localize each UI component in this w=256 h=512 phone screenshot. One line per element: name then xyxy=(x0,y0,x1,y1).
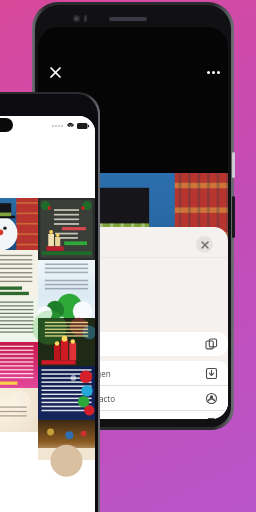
button[interactable]: Close xyxy=(44,61,66,83)
staticText: Guardar imagen xyxy=(49,368,111,379)
button[interactable] xyxy=(0,342,38,388)
button[interactable] xyxy=(0,298,38,342)
button[interactable] xyxy=(38,198,95,260)
button[interactable] xyxy=(0,250,38,298)
button[interactable] xyxy=(0,388,38,432)
button[interactable]: Dismiss xyxy=(196,236,213,253)
button[interactable]: Copiar xyxy=(38,332,228,356)
button[interactable] xyxy=(38,420,95,460)
button[interactable]: Añadir a contacto xyxy=(38,386,228,410)
button[interactable] xyxy=(38,366,95,420)
button[interactable]: Guardar imagen xyxy=(38,361,228,385)
button[interactable]: Imprimir xyxy=(38,411,228,419)
button[interactable] xyxy=(38,318,95,366)
button[interactable] xyxy=(38,260,95,318)
button[interactable]: More options xyxy=(202,61,224,83)
staticText: Copiar xyxy=(49,339,74,350)
staticText: Añadir a contacto xyxy=(49,393,116,404)
button[interactable] xyxy=(0,198,38,250)
